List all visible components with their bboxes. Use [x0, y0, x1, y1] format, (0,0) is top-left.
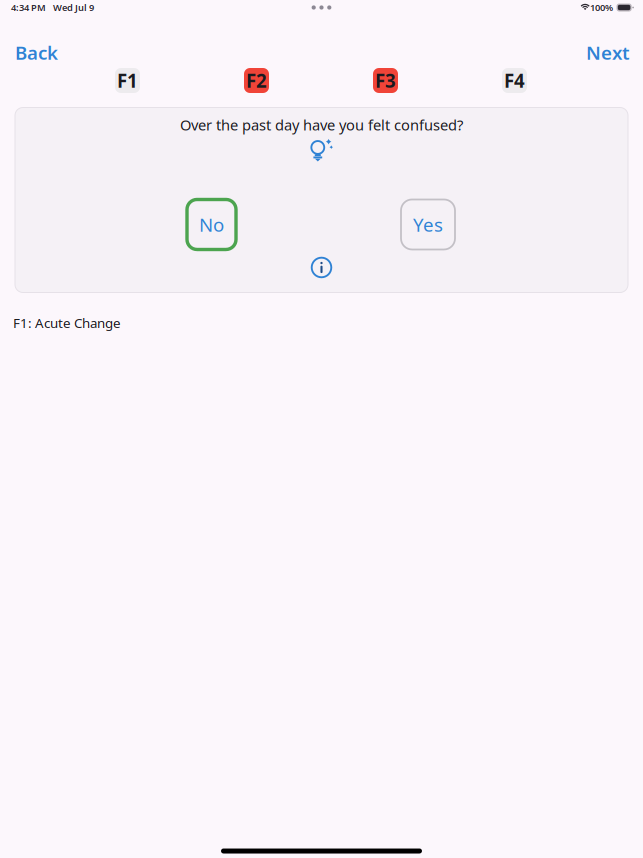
staticText: F2 — [246, 68, 267, 93]
button[interactable]: More information — [311, 257, 332, 278]
button[interactable]: F3 — [373, 68, 398, 93]
staticText: Next — [586, 40, 630, 65]
button[interactable]: No — [187, 199, 236, 249]
button[interactable]: Back — [0, 40, 72, 65]
staticText: 100% — [590, 1, 613, 14]
staticText: F1 — [117, 68, 138, 93]
button[interactable]: F1 — [115, 68, 140, 93]
staticText: 4:34 PM — [11, 1, 46, 14]
staticText: Yes — [413, 212, 443, 237]
button[interactable]: F4 — [502, 68, 527, 93]
staticText: No — [199, 212, 224, 237]
staticText: F3 — [375, 68, 396, 93]
staticText: Back — [15, 40, 58, 65]
staticText: F4 — [504, 68, 525, 93]
button[interactable]: Next — [572, 40, 643, 65]
button[interactable]: F2 — [244, 68, 269, 93]
staticText: Over the past day have you felt confused… — [180, 115, 463, 134]
staticText: Wed Jul 9 — [53, 1, 94, 14]
button[interactable]: Yes — [401, 199, 455, 249]
staticText: F1: Acute Change — [13, 314, 121, 332]
